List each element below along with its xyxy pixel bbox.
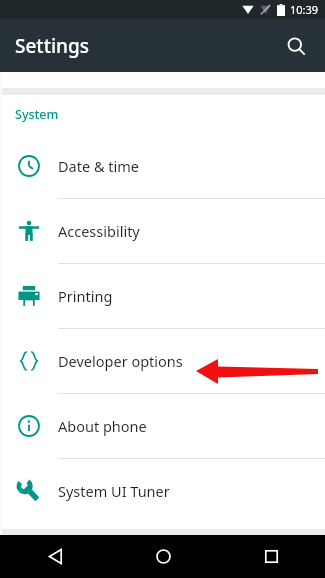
button[interactable]: Printing xyxy=(0,264,325,328)
staticText: Date & time xyxy=(58,156,139,176)
staticText: Accessibility xyxy=(58,221,140,241)
button[interactable]: Accessibility xyxy=(0,199,325,263)
button[interactable]: Recent apps xyxy=(249,535,293,578)
button[interactable]: Home xyxy=(141,535,185,578)
staticText: Developer options xyxy=(58,351,183,371)
button[interactable]: Developer options xyxy=(0,329,325,393)
button[interactable]: Search xyxy=(275,25,317,67)
staticText: System xyxy=(15,106,59,123)
button[interactable]: System UI Tuner xyxy=(0,459,325,523)
button[interactable]: Back xyxy=(33,535,77,578)
button[interactable]: Date & time xyxy=(0,134,325,198)
staticText: System UI Tuner xyxy=(58,481,170,501)
button[interactable]: About phone xyxy=(0,394,325,458)
staticText: About phone xyxy=(58,416,147,436)
staticText: 10:39 xyxy=(290,2,319,17)
staticText: Printing xyxy=(58,286,113,306)
staticText: Settings xyxy=(15,33,89,59)
